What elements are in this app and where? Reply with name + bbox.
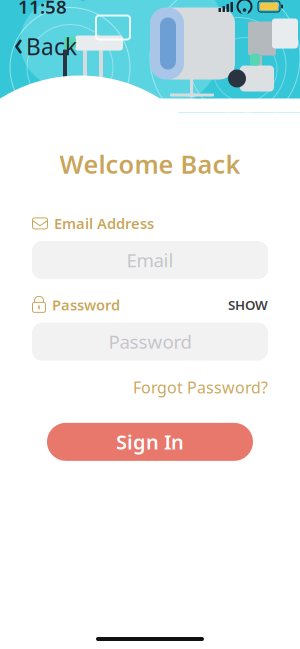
staticText: Password — [108, 329, 191, 354]
staticText: Forgot Password? — [133, 377, 268, 398]
staticText: Email — [126, 248, 173, 272]
button[interactable]: Password — [32, 323, 268, 361]
staticText: SHOW — [228, 296, 268, 314]
staticText: 11:58 — [18, 0, 67, 19]
staticText: Email Address — [54, 214, 154, 233]
staticText: Password — [52, 295, 120, 315]
button[interactable]: Sign In — [47, 423, 253, 461]
button[interactable]: Forgot Password? — [133, 377, 268, 398]
staticText: Welcome Back — [59, 147, 240, 181]
staticText: Sign In — [116, 429, 184, 455]
button[interactable]: Email — [32, 241, 268, 279]
button[interactable]: SHOW — [228, 296, 268, 314]
button[interactable]: Back — [6, 25, 85, 68]
staticText: Back — [26, 31, 77, 62]
